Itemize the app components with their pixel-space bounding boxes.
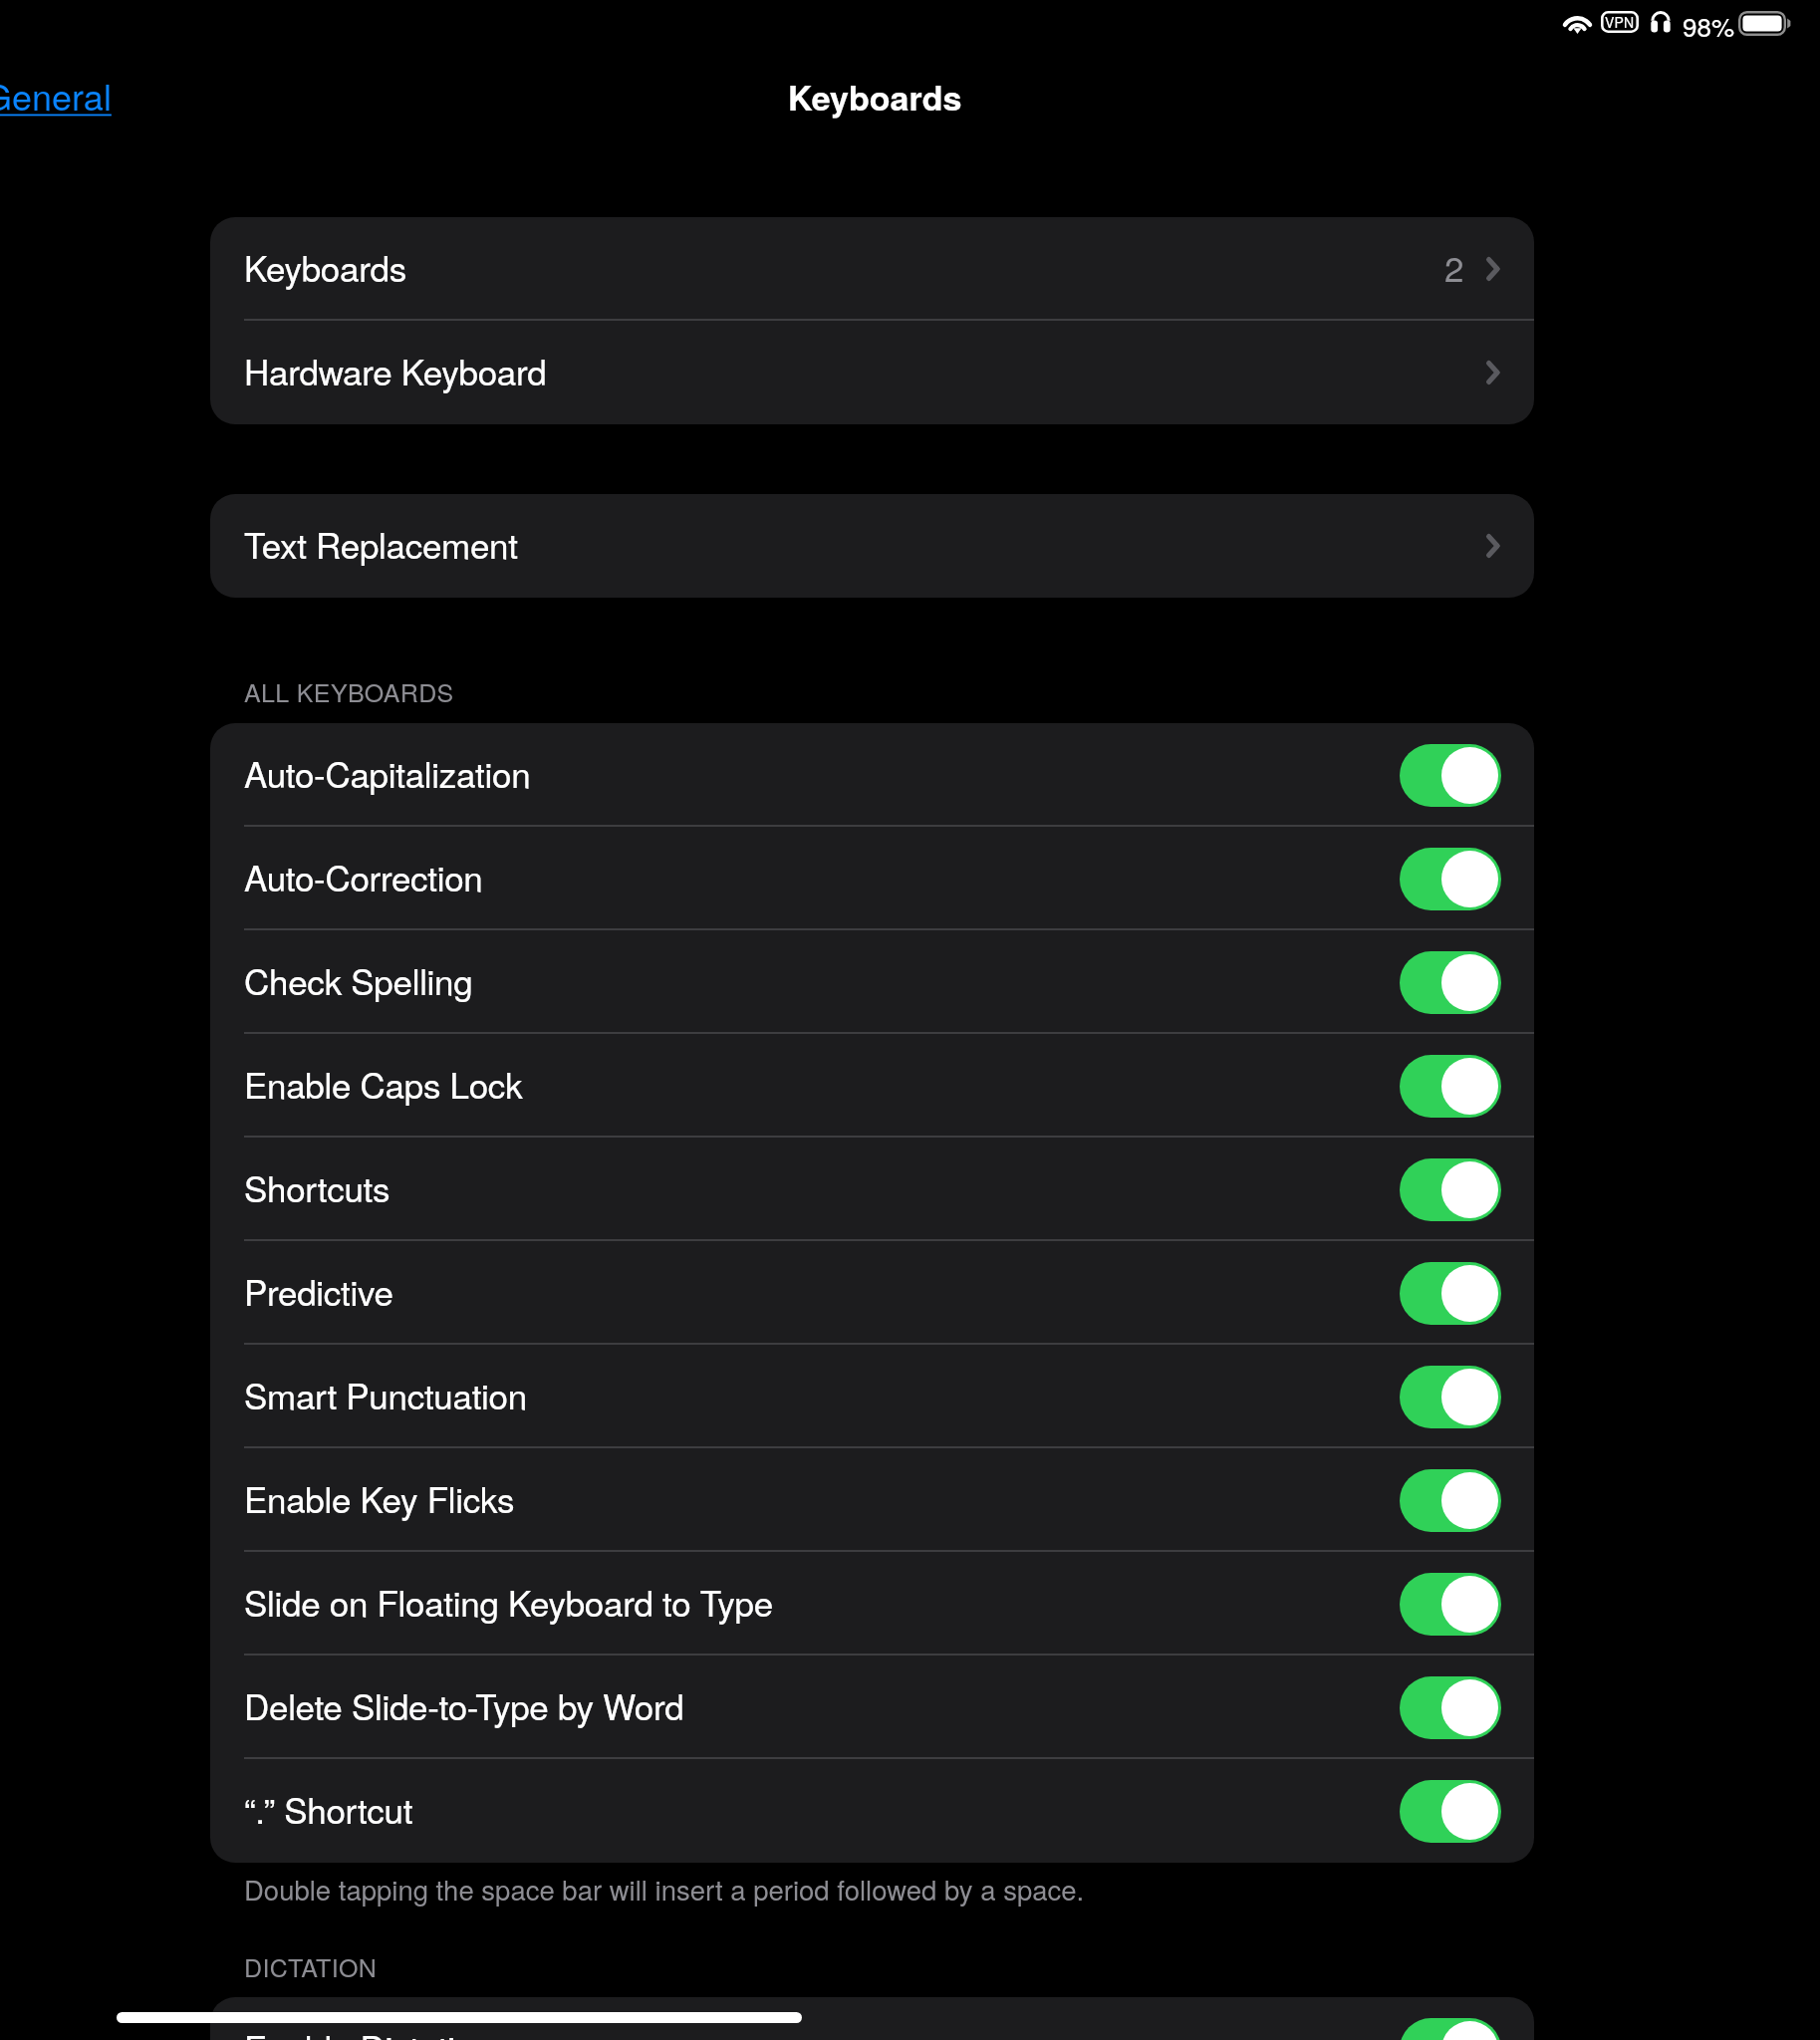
staticText: Check Spelling [244,955,473,1005]
staticText: Double tapping the space bar will insert… [244,1869,1085,1908]
staticText: General [0,70,112,122]
button[interactable]: Smart Punctuation, on [1400,1366,1501,1428]
button[interactable]: Delete Slide-to-Type by Word [210,1656,1534,1759]
staticText: ALL KEYBOARDS [244,673,454,709]
button[interactable]: Text Replacement [210,494,1534,598]
staticText: DICTATION [244,1948,378,1984]
button[interactable]: “.” Shortcut [210,1759,1534,1863]
button[interactable]: General [0,70,112,122]
button[interactable]: Enable Caps Lock, on [1400,1055,1501,1118]
button[interactable]: Predictive, on [1400,1262,1501,1325]
button[interactable]: Slide on Floating Keyboard to Type [210,1552,1534,1656]
staticText: Enable Caps Lock [244,1059,523,1109]
staticText: “.” Shortcut [244,1784,413,1834]
button[interactable]: Enable Caps Lock [210,1034,1534,1138]
button[interactable]: Auto-Correction [210,827,1534,930]
staticText: Auto-Correction [244,852,483,901]
button[interactable]: Predictive [210,1241,1534,1345]
button[interactable]: Slide on Floating Keyboard to Type, on [1400,1573,1501,1636]
button[interactable]: Delete Slide-to-Type by Word, on [1400,1676,1501,1739]
staticText: VPN [1605,12,1635,32]
staticText: 2 [1444,242,1464,292]
button[interactable]: “.” Shortcut, on [1400,1780,1501,1843]
button[interactable]: Hardware Keyboard [210,321,1534,424]
staticText: Predictive [244,1266,393,1316]
staticText: Enable Key Flicks [244,1473,515,1523]
staticText: Shortcuts [244,1162,390,1212]
staticText: Hardware Keyboard [244,346,547,395]
other: Open Hardware Keyboard [1486,353,1500,392]
staticText: Smart Punctuation [244,1370,527,1419]
staticText: Slide on Floating Keyboard to Type [244,1577,773,1627]
button[interactable]: Keyboards [210,217,1534,321]
button[interactable]: Check Spelling, on [1400,951,1501,1014]
button[interactable]: Shortcuts [210,1138,1534,1241]
button[interactable]: Smart Punctuation [210,1345,1534,1448]
button[interactable]: Enable Dictation, on [1400,2018,1501,2040]
button[interactable]: Enable Key Flicks, on [1400,1469,1501,1532]
staticText: Enable Dictation [244,2022,494,2040]
staticText: Delete Slide-to-Type by Word [244,1680,684,1730]
staticText: Auto-Capitalization [244,748,531,798]
button[interactable]: Enable Key Flicks [210,1448,1534,1552]
button[interactable]: Auto-Capitalization, on [1400,744,1501,807]
button[interactable]: Auto-Capitalization [210,723,1534,827]
staticText: Keyboards [788,73,962,122]
button[interactable]: Check Spelling [210,930,1534,1034]
staticText: Text Replacement [244,519,518,569]
button[interactable]: Enable Dictation [210,1997,1534,2040]
other: Open Text Replacement [1486,526,1500,566]
staticText: 98% [1683,7,1735,44]
staticText: Keyboards [244,242,406,292]
other: Open Keyboards [1486,249,1500,289]
button[interactable]: Shortcuts, on [1400,1158,1501,1221]
button[interactable]: Auto-Correction, on [1400,848,1501,910]
